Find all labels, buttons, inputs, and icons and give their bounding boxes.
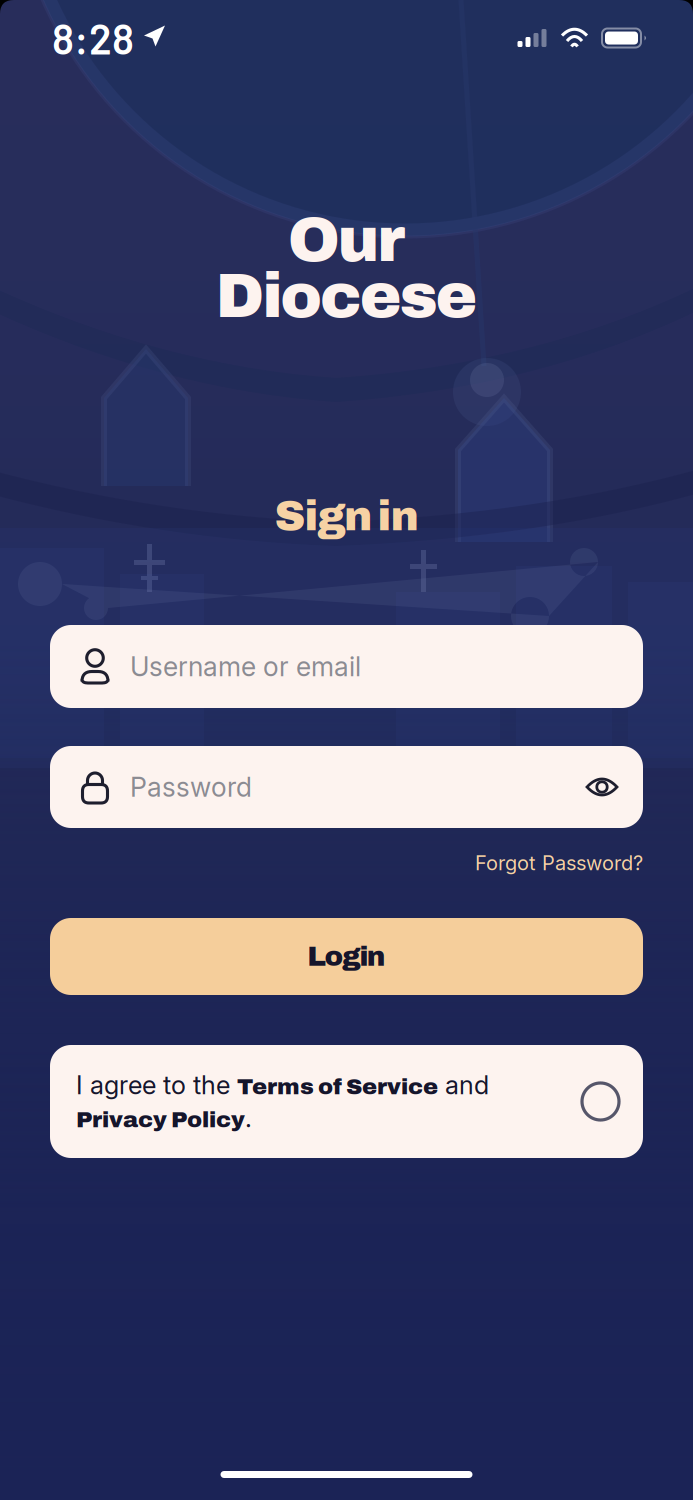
staticText: Sign in [275, 493, 418, 539]
staticText: Password [130, 771, 252, 803]
staticText: 8:28 [52, 13, 134, 63]
button[interactable]: Accept terms [582, 1083, 619, 1120]
button[interactable]: Login [50, 918, 643, 995]
staticText: Our [288, 206, 405, 274]
staticText: Username or email [130, 650, 361, 683]
staticText: Forgot Password? [475, 851, 643, 875]
button[interactable]: Show password [579, 767, 625, 807]
button[interactable]: Forgot Password? [475, 846, 643, 880]
staticText: Diocese [216, 262, 477, 330]
staticText: Privacy Policy. [76, 1103, 252, 1133]
staticText: Login [307, 941, 386, 972]
staticText: I agree to the Terms of Service and [76, 1070, 489, 1100]
